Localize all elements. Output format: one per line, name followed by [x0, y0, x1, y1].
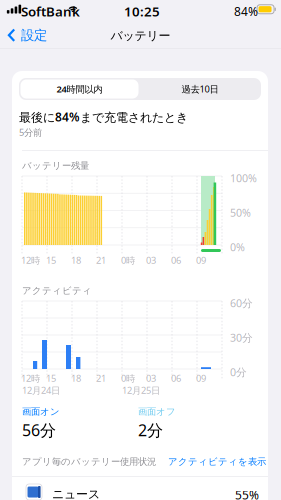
staticText: バッテリー: [110, 28, 170, 43]
staticText: 0時: [121, 254, 135, 266]
staticText: 18: [71, 254, 81, 266]
staticText: 12時: [21, 372, 40, 384]
staticText: 画面オフ: [138, 406, 176, 417]
staticText: 12月25日: [122, 384, 160, 396]
staticText: 55%: [235, 487, 259, 500]
staticText: 15: [46, 372, 56, 384]
button[interactable]: 設定: [0, 20, 55, 50]
staticText: 最後に84%まで充電されたとき: [19, 109, 188, 125]
staticText: 12時: [21, 254, 40, 266]
staticText: 60分: [230, 296, 253, 310]
button[interactable]: アクティビティを表示: [168, 456, 266, 467]
staticText: 12月24日: [22, 384, 60, 396]
staticText: 03: [146, 372, 156, 384]
staticText: アクティビティ: [22, 285, 92, 296]
staticText: 03: [146, 254, 156, 266]
staticText: 0%: [230, 240, 245, 254]
staticText: 5分前: [19, 126, 42, 138]
staticText: 50%: [230, 205, 251, 220]
staticText: 過去10日: [181, 83, 218, 95]
staticText: 84%: [234, 3, 258, 19]
staticText: 0時: [121, 372, 135, 384]
staticText: 設定: [21, 27, 47, 43]
staticText: ニュース: [52, 487, 100, 500]
button[interactable]: 24時間以内: [20, 79, 138, 98]
staticText: 09: [196, 372, 206, 384]
staticText: バッテリー残量: [22, 160, 89, 171]
staticText: 18: [71, 372, 81, 384]
staticText: 画面オン: [22, 406, 60, 417]
staticText: 06: [171, 372, 181, 384]
staticText: 24時間以内: [56, 83, 102, 95]
staticText: アクティビティを表示: [168, 456, 266, 467]
staticText: 56分: [22, 419, 56, 441]
staticText: 10:25: [124, 2, 160, 20]
staticText: SoftBank: [21, 2, 80, 20]
staticText: 2分: [138, 419, 163, 441]
staticText: 21: [96, 372, 106, 384]
button[interactable]: 過去10日: [141, 79, 259, 98]
staticText: アプリ毎のバッテリー使用状況: [22, 456, 156, 467]
staticText: 30分: [230, 330, 253, 345]
staticText: 21: [96, 254, 106, 266]
staticText: 06: [171, 254, 181, 266]
staticText: 15: [46, 254, 56, 266]
staticText: 09: [196, 254, 206, 266]
staticText: 100%: [230, 171, 257, 185]
staticText: 0分: [230, 365, 247, 379]
